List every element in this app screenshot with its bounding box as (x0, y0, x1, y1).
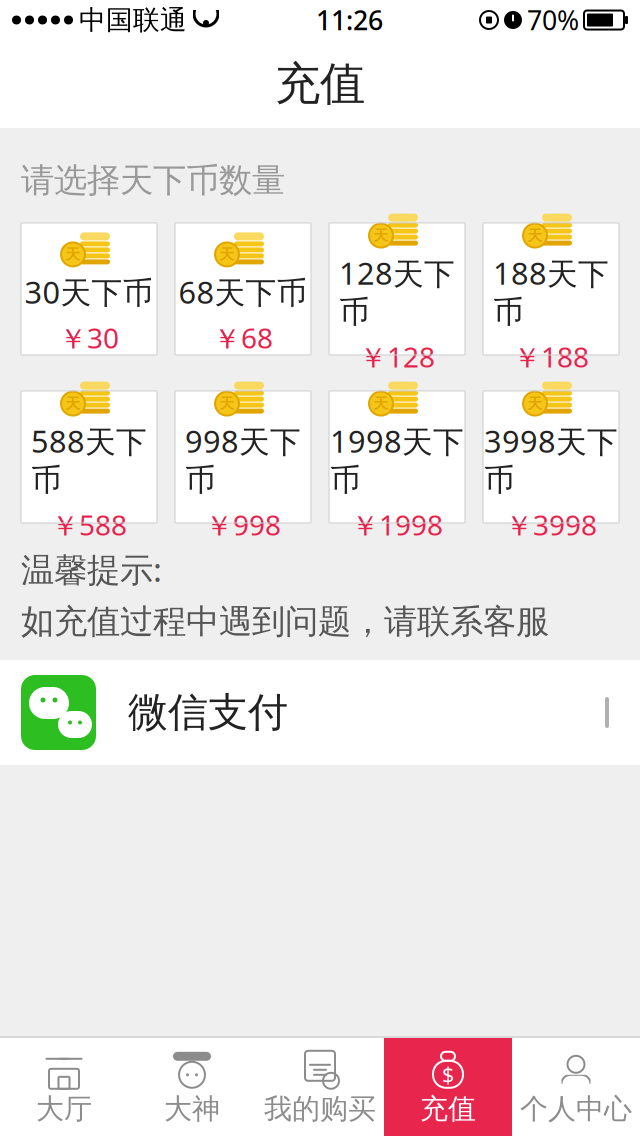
button[interactable]: 天 (21, 391, 157, 523)
staticText: 1998天下币 (330, 421, 464, 499)
staticText: 128天下币 (339, 253, 455, 331)
staticText: 998天下币 (185, 421, 301, 499)
staticText: ￥68 (213, 319, 273, 356)
button[interactable]: 天 (329, 391, 465, 523)
button[interactable]: 天 (175, 391, 311, 523)
staticText: 588天下币 (31, 421, 147, 499)
staticText: 188天下币 (493, 253, 609, 331)
staticText: 我的购买 (264, 1092, 376, 1126)
staticText: ￥188 (513, 338, 589, 375)
staticText: $ (442, 1060, 454, 1088)
staticText: 11:26 (316, 2, 383, 38)
button[interactable]: 天 (483, 391, 619, 523)
staticText: 中国联通 (79, 4, 187, 36)
staticText: 天 (219, 245, 234, 263)
staticText: 70% (527, 2, 579, 38)
staticText: ￥3998 (505, 506, 597, 543)
staticText: 如充值过程中遇到问题，请联系客服 (21, 601, 549, 642)
button[interactable]: 微信支付 (0, 660, 640, 765)
staticText: ￥128 (359, 338, 435, 375)
staticText: ￥998 (205, 506, 281, 543)
staticText: 天 (527, 227, 542, 245)
button[interactable]: 我的购买 (256, 1038, 384, 1136)
button[interactable]: 天 (175, 223, 311, 355)
button[interactable]: 个人中心 (512, 1038, 640, 1136)
button[interactable]: $ (384, 1038, 512, 1136)
staticText: 请选择天下币数量 (21, 160, 285, 201)
staticText: 天 (219, 395, 234, 413)
staticText: 充值 (420, 1092, 476, 1126)
staticText: 天 (65, 395, 80, 413)
staticText: 天 (527, 395, 542, 413)
staticText: ￥30 (59, 319, 119, 356)
button[interactable]: 大厅 (0, 1038, 128, 1136)
staticText: 3998天下币 (484, 421, 618, 499)
staticText: ￥1998 (351, 506, 443, 543)
staticText: 大厅 (36, 1092, 92, 1126)
staticText: 天 (373, 227, 388, 245)
button[interactable]: 大神 (128, 1038, 256, 1136)
button[interactable]: 天 (21, 223, 157, 355)
staticText: 天 (373, 395, 388, 413)
staticText: 温馨提示: (21, 547, 162, 591)
staticText: 个人中心 (520, 1092, 632, 1126)
button[interactable]: 天 (329, 223, 465, 355)
staticText: 大神 (164, 1092, 220, 1126)
staticText: 68天下币 (178, 271, 307, 312)
staticText: 天 (65, 245, 80, 263)
staticText: 30天下币 (24, 271, 153, 312)
staticText: ￥588 (51, 506, 127, 543)
button[interactable]: 天 (483, 223, 619, 355)
staticText: 微信支付 (128, 688, 288, 737)
staticText: 充值 (275, 56, 365, 112)
